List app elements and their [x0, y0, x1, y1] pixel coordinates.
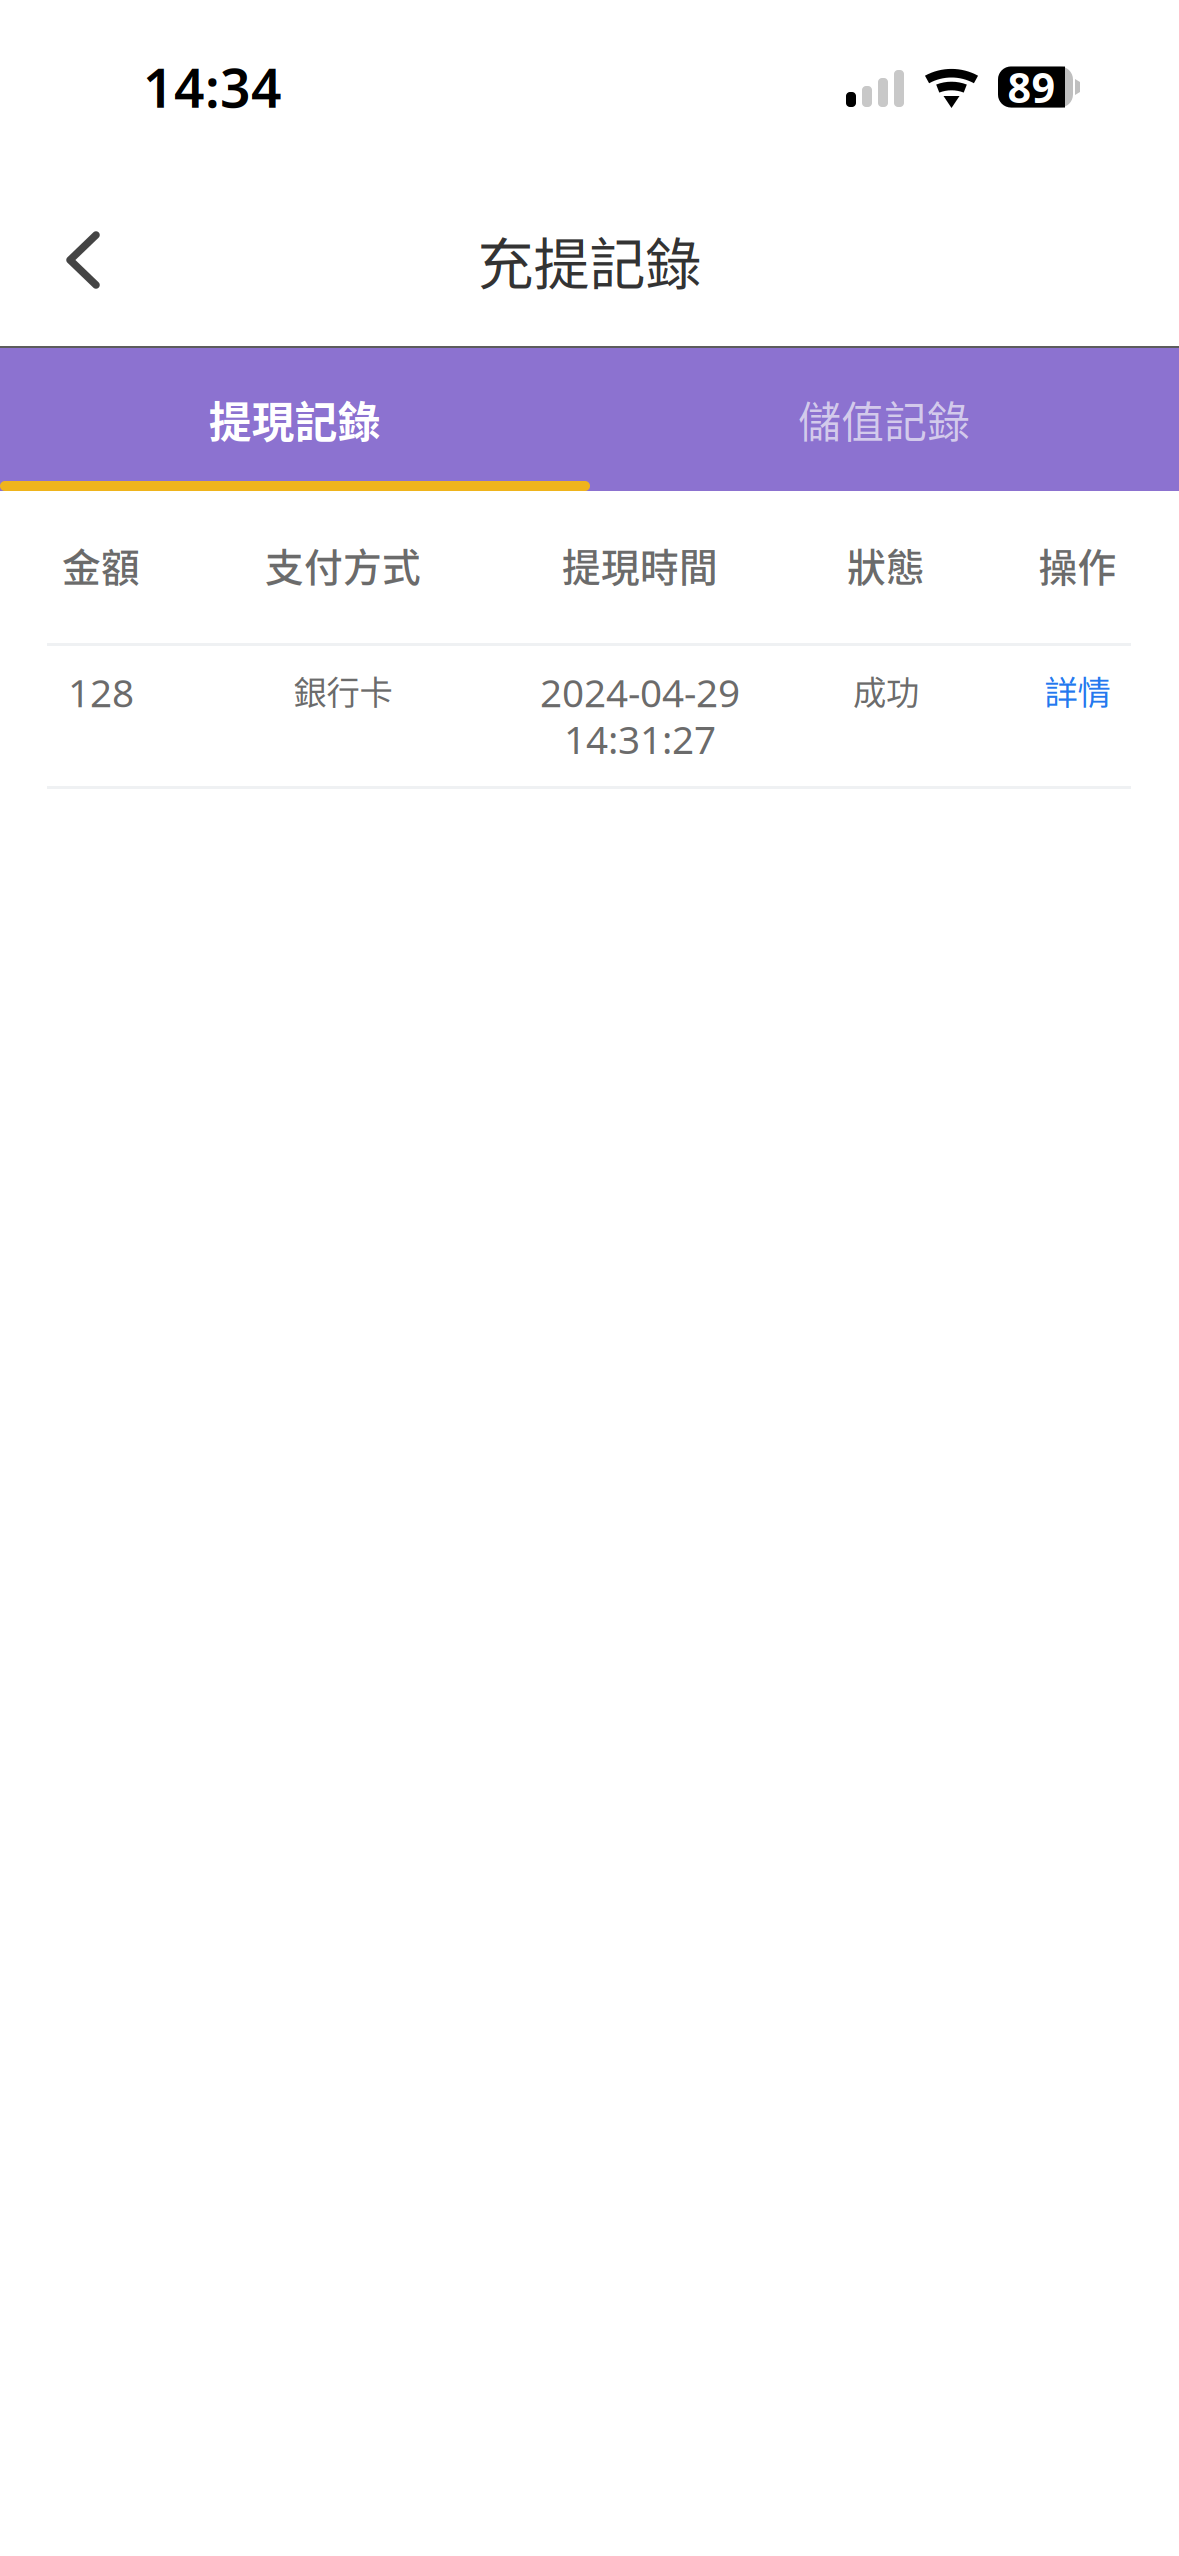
staticText: 支付方式 [265, 537, 421, 593]
staticText: 14:34 [143, 52, 282, 122]
staticText: 金額 [62, 537, 140, 593]
staticText: 儲值記錄 [798, 389, 970, 450]
staticText: 提現記錄 [209, 389, 381, 450]
staticText: 14:31:27 [564, 713, 716, 765]
button[interactable]: 提現記錄 [0, 348, 589, 491]
staticText: 89 [1007, 60, 1055, 114]
staticText: 狀態 [847, 537, 925, 593]
button[interactable]: 儲值記錄 [589, 348, 1179, 491]
staticText: 充提記錄 [477, 219, 701, 301]
button[interactable]: Back [0, 205, 166, 315]
staticText: 詳情 [1044, 666, 1110, 714]
staticText: 銀行卡 [293, 666, 392, 714]
staticText: 成功 [853, 666, 919, 714]
staticText: 操作 [1038, 537, 1116, 593]
button[interactable]: 詳情 [976, 666, 1179, 757]
staticText: 提現時間 [562, 537, 718, 593]
staticText: 128 [68, 666, 134, 719]
staticText: 2024-04-29 [540, 666, 740, 719]
